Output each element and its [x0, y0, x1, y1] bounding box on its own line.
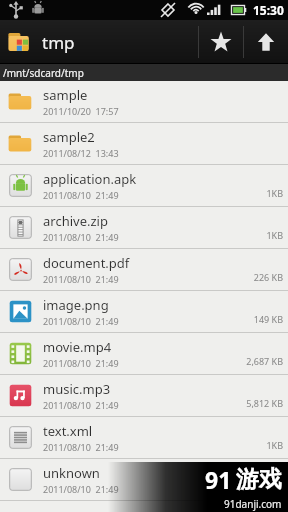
staticText: 2,687 KB [246, 355, 283, 367]
button[interactable]: Up one level [244, 20, 288, 64]
staticText: 1KB [266, 439, 283, 451]
button[interactable]: music.mp3 [0, 375, 288, 417]
staticText: sample2 [43, 128, 95, 146]
button[interactable]: sample2 [0, 123, 288, 165]
staticText: /mnt/sdcard/tmp [3, 66, 84, 80]
staticText: unknown [43, 464, 100, 482]
staticText: 1KB [266, 187, 283, 199]
button[interactable]: sample [0, 81, 288, 123]
staticText: 15:30 [253, 2, 284, 18]
button[interactable]: Bookmarks [199, 20, 243, 64]
button[interactable]: application.apk [0, 165, 288, 207]
button[interactable]: image.png [0, 291, 288, 333]
staticText: music.mp3 [43, 380, 111, 398]
staticText: archive.zip [43, 212, 108, 230]
staticText: 2011/08/10 21:49 [43, 357, 119, 369]
button[interactable]: movie.mp4 [0, 333, 288, 375]
staticText: document.pdf [43, 254, 130, 272]
button[interactable]: archive.zip [0, 207, 288, 249]
staticText: image.png [43, 296, 109, 314]
staticText: movie.mp4 [43, 338, 112, 356]
staticText: 226 KB [253, 271, 283, 283]
staticText: 2011/08/10 21:49 [43, 189, 119, 201]
button[interactable]: unknown [0, 459, 288, 501]
staticText: text.xml [43, 422, 93, 440]
staticText: 91danji.com [224, 497, 282, 511]
staticText: 2011/08/12 13:43 [43, 147, 119, 159]
staticText: 91 [205, 464, 232, 495]
button[interactable]: text.xml [0, 417, 288, 459]
staticText: 2011/10/20 17:57 [43, 105, 119, 117]
staticText: 149 KB [253, 313, 283, 325]
staticText: 2011/08/10 21:49 [43, 273, 119, 285]
button[interactable]: tmp [0, 20, 198, 64]
staticText: 2011/08/10 21:49 [43, 483, 119, 495]
staticText: 游戏 [236, 465, 282, 494]
staticText: sample [43, 86, 88, 104]
staticText: tmp [42, 31, 75, 54]
staticText: 1KB [266, 229, 283, 241]
staticText: 2011/08/10 21:49 [43, 399, 119, 411]
staticText: 2011/08/10 21:49 [43, 441, 119, 453]
staticText: 2011/08/10 21:49 [43, 231, 119, 243]
staticText: application.apk [43, 170, 137, 188]
staticText: 2011/08/10 21:49 [43, 315, 119, 327]
staticText: 5,812 KB [246, 397, 283, 409]
button[interactable]: document.pdf [0, 249, 288, 291]
